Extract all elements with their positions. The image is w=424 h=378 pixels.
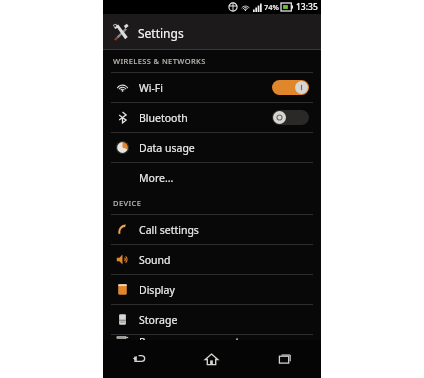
staticText: Bluetooth — [139, 111, 188, 125]
button[interactable]: Home — [175, 340, 248, 378]
staticText: Data usage — [139, 141, 195, 155]
button[interactable]: Back — [103, 340, 175, 378]
staticText: Storage — [139, 313, 178, 327]
button[interactable]: Settings — [103, 14, 321, 50]
staticText: Settings — [138, 25, 184, 41]
staticText: DEVICE — [113, 198, 142, 208]
button[interactable]: Storage — [103, 305, 321, 334]
button[interactable]: Display — [103, 275, 321, 304]
button[interactable]: More... — [103, 163, 321, 192]
button[interactable]: Recent apps — [248, 340, 321, 378]
button[interactable]: Sound — [103, 245, 321, 274]
button[interactable]: Bluetooth — [103, 103, 321, 132]
staticText: Call settings — [139, 223, 199, 237]
button[interactable]: On — [272, 80, 309, 95]
staticText: Sound — [139, 253, 171, 267]
staticText: Wi-Fi — [139, 81, 164, 95]
staticText: More... — [139, 171, 174, 185]
button[interactable]: Data usage — [103, 133, 321, 162]
staticText: WIRELESS & NETWORKS — [113, 56, 206, 66]
button[interactable]: Wi-Fi — [103, 73, 321, 102]
button[interactable]: Off — [272, 110, 309, 125]
staticText: Display — [139, 283, 175, 297]
button[interactable]: Call settings — [103, 215, 321, 244]
staticText: 74% — [264, 2, 279, 12]
staticText: 13:35 — [296, 1, 318, 13]
button[interactable]: Power management — [103, 335, 321, 340]
staticText: Power management — [139, 335, 240, 340]
